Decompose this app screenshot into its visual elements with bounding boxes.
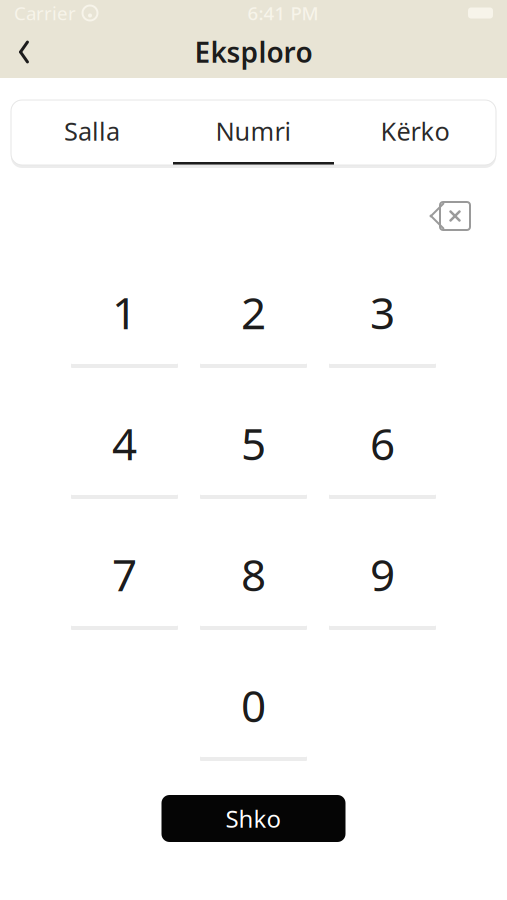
staticText: 1 [112, 283, 137, 341]
button[interactable]: Shko [161, 795, 345, 842]
button[interactable]: Salla [11, 100, 173, 165]
staticText: Eksploro [194, 33, 312, 71]
button[interactable]: Kërko [334, 100, 496, 165]
staticText: 7 [112, 545, 137, 603]
staticText: 9 [370, 545, 395, 603]
staticText: 2 [241, 283, 266, 341]
button[interactable]: 6 [329, 388, 436, 495]
staticText: 4 [112, 414, 137, 472]
staticText: Carrier [14, 1, 76, 25]
button[interactable]: Back [0, 26, 48, 78]
button[interactable]: 7 [71, 519, 178, 626]
button[interactable]: 3 [329, 257, 436, 364]
button[interactable]: 4 [71, 388, 178, 495]
staticText: Salla [64, 114, 120, 148]
staticText: Numri [215, 114, 291, 148]
button[interactable]: 8 [200, 519, 307, 626]
button[interactable]: Numri [173, 100, 334, 165]
button[interactable]: 0 [200, 650, 307, 757]
staticText: Shko [225, 803, 281, 834]
staticText: 5 [241, 414, 266, 472]
button[interactable]: 5 [200, 388, 307, 495]
staticText: Kërko [381, 114, 450, 148]
staticText: 6:41 PM [247, 1, 318, 25]
button[interactable]: 1 [71, 257, 178, 364]
staticText: 6 [370, 414, 395, 472]
button[interactable]: 9 [329, 519, 436, 626]
button[interactable]: Delete [417, 195, 479, 237]
button[interactable]: 2 [200, 257, 307, 364]
staticText: 8 [241, 545, 266, 603]
staticText: 0 [241, 676, 266, 734]
staticText: 3 [370, 283, 395, 341]
